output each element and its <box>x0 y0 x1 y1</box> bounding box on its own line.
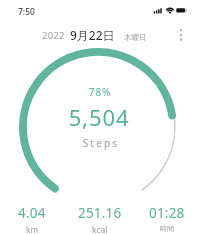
staticText: 7:50 <box>18 6 35 18</box>
staticText: 78% <box>20 85 180 99</box>
button[interactable]: More options <box>173 27 189 43</box>
staticText: kcal <box>92 224 108 234</box>
staticText: 251.16 <box>78 204 122 222</box>
button[interactable]: 251.16 <box>67 204 133 234</box>
staticText: 4.04 <box>18 204 46 222</box>
staticText: 2022 <box>42 29 65 42</box>
staticText: 01:28 <box>149 204 185 222</box>
staticText: 木曜日 <box>124 33 147 42</box>
staticText: Steps <box>21 136 181 150</box>
staticText: 9月22日 <box>70 27 115 43</box>
button[interactable]: 01:28 <box>134 204 199 233</box>
staticText: km <box>26 224 39 234</box>
staticText: 時間 <box>160 224 175 233</box>
button[interactable]: 4.04 <box>0 204 65 234</box>
staticText: 5,504 <box>19 102 179 132</box>
